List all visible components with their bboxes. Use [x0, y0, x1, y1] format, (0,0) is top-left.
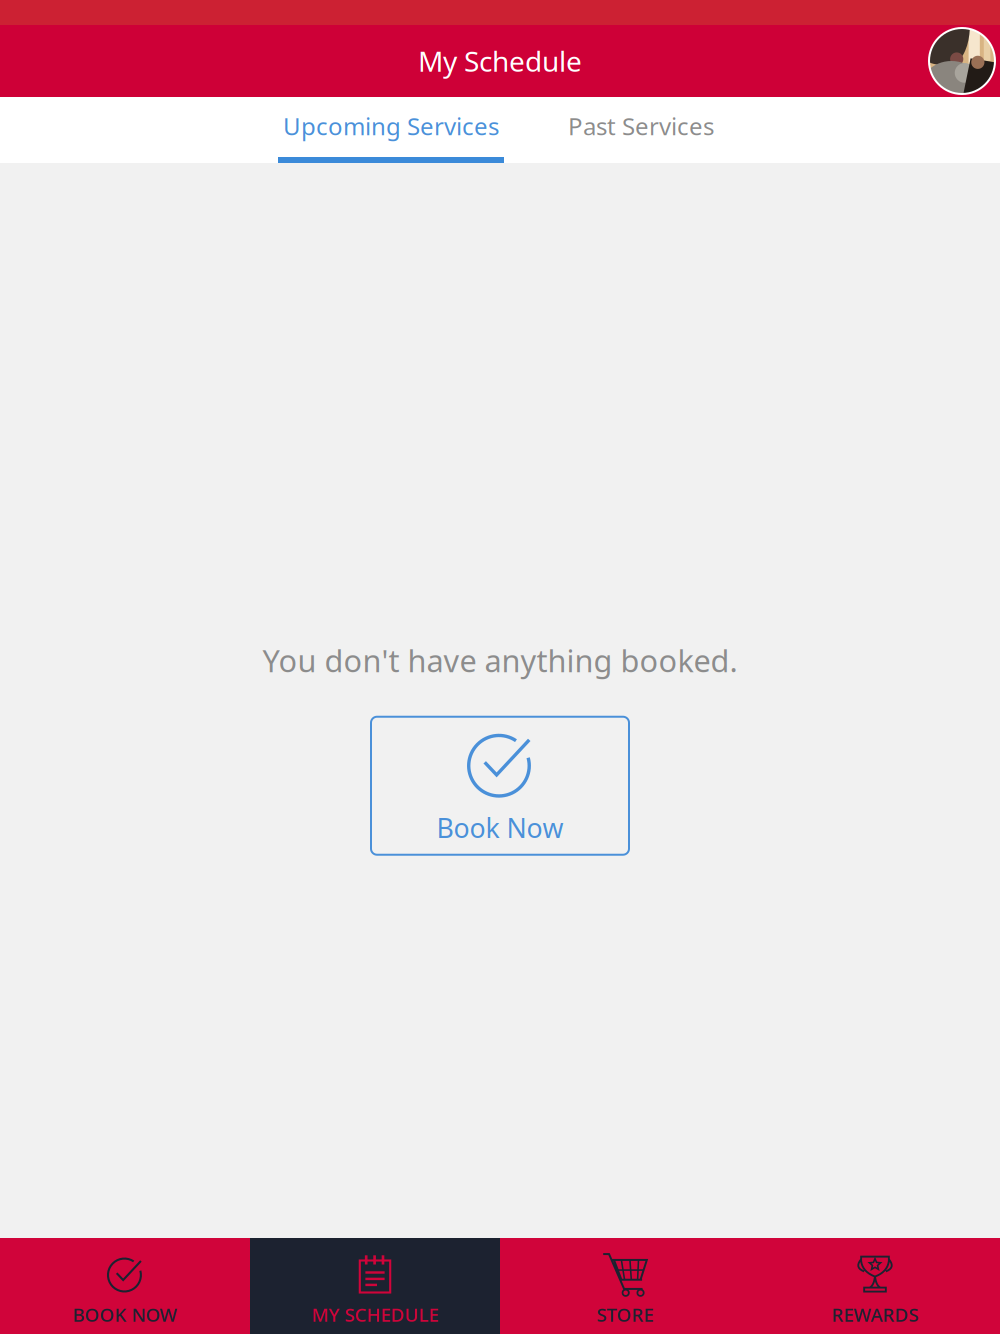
- button[interactable]: Upcoming Services: [240, 97, 542, 163]
- staticText: MY SCHEDULE: [311, 1302, 438, 1327]
- staticText: Book Now: [436, 810, 563, 845]
- button[interactable]: BOOK NOW: [0, 1238, 250, 1334]
- button[interactable]: Profile: [929, 28, 995, 94]
- button[interactable]: REWARDS: [750, 1238, 1000, 1334]
- staticText: Upcoming Services: [283, 110, 499, 142]
- staticText: My Schedule: [418, 42, 582, 80]
- button[interactable]: Past Services: [542, 97, 740, 163]
- staticText: STORE: [596, 1302, 653, 1327]
- button[interactable]: MY SCHEDULE: [250, 1238, 500, 1334]
- button[interactable]: STORE: [500, 1238, 750, 1334]
- staticText: Past Services: [568, 110, 714, 142]
- staticText: BOOK NOW: [72, 1302, 177, 1327]
- staticText: REWARDS: [831, 1302, 918, 1327]
- staticText: You don't have anything booked.: [262, 640, 737, 681]
- button[interactable]: Book Now: [371, 717, 629, 855]
